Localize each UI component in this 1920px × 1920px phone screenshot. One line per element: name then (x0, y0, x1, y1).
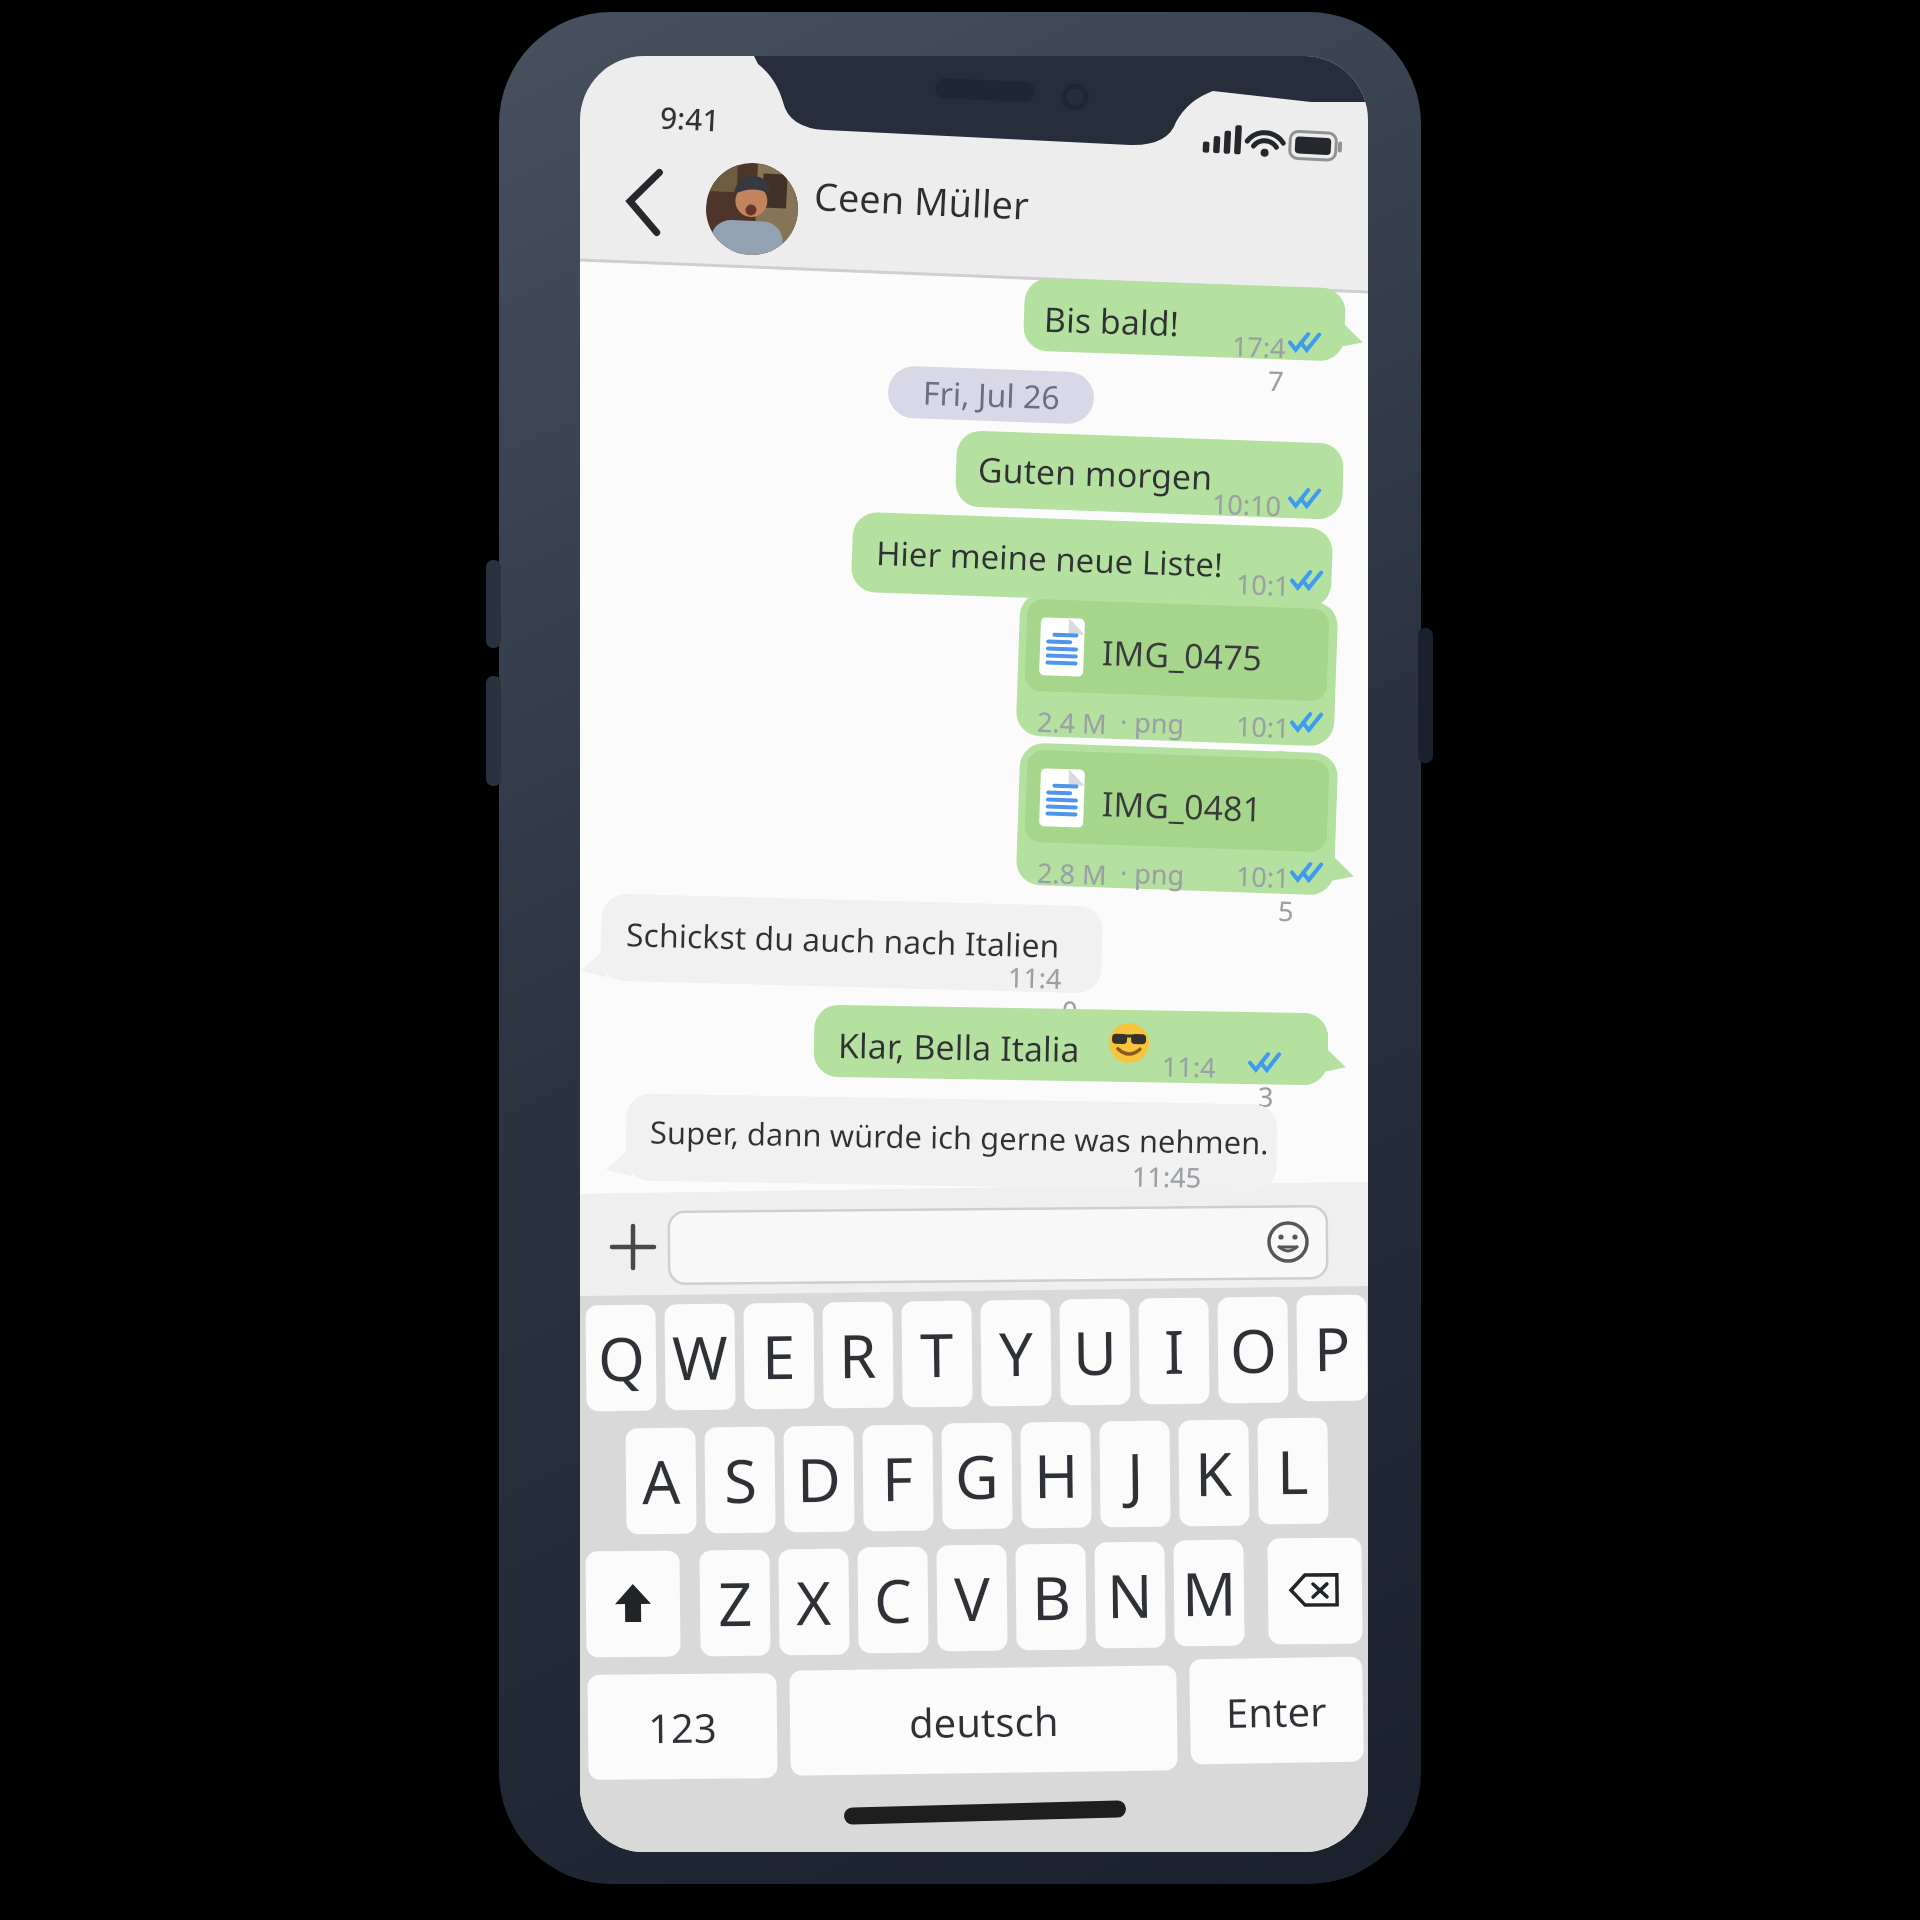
staticText: 11:4 (1162, 1047, 1216, 1085)
button[interactable]: F (862, 1425, 933, 1531)
staticText: F (882, 1437, 914, 1519)
button[interactable]: X (778, 1549, 849, 1655)
button[interactable]: B (1015, 1544, 1086, 1650)
staticText: 10:10 (1211, 485, 1283, 524)
staticText: A (642, 1440, 681, 1522)
button[interactable]: 123 (587, 1673, 778, 1780)
button[interactable] (1266, 1220, 1310, 1264)
button[interactable]: J (1099, 1421, 1170, 1527)
staticText: 0 (1061, 992, 1078, 1029)
staticText: IMG_0475 (1101, 629, 1264, 681)
staticText: · png (1119, 703, 1186, 742)
staticText: Y (999, 1312, 1033, 1394)
staticText: Enter (1225, 1683, 1327, 1739)
staticText: 3 (1258, 1078, 1274, 1115)
button[interactable]: G (941, 1423, 1012, 1529)
staticText: 7 (1267, 362, 1285, 399)
staticText: Ceen Müller (813, 169, 1030, 231)
staticText: J (1127, 1433, 1144, 1515)
button[interactable] (1267, 1537, 1362, 1644)
staticText: 10:1 (1235, 857, 1291, 896)
staticText: M (1182, 1552, 1237, 1634)
staticText: Fri, Jul 26 (922, 371, 1061, 419)
button[interactable]: R (822, 1302, 893, 1408)
staticText: Schickst du auch nach Italien (625, 912, 1060, 968)
button[interactable] (623, 169, 669, 237)
staticText: D (797, 1438, 841, 1520)
staticText: R (839, 1314, 877, 1396)
staticText: 11:4 (1007, 958, 1062, 997)
button[interactable]: Z (699, 1550, 770, 1656)
staticText: 5 (1273, 742, 1291, 779)
staticText: IMG_0481 (1101, 780, 1264, 832)
staticText: Z (718, 1562, 753, 1644)
button[interactable]: H (1020, 1422, 1091, 1528)
button[interactable]: T (901, 1301, 972, 1407)
button[interactable] (585, 1550, 680, 1657)
staticText: V (954, 1557, 990, 1639)
staticText: E (762, 1315, 796, 1397)
staticText: T (920, 1313, 954, 1395)
staticText: Klar, Bella Italia (838, 1022, 1080, 1072)
button[interactable]: D (783, 1426, 854, 1532)
button[interactable]: Y (980, 1300, 1051, 1406)
staticText: Q (598, 1317, 645, 1399)
staticText: W (672, 1316, 728, 1398)
staticText: C (874, 1559, 912, 1641)
staticText: I (1164, 1310, 1185, 1392)
staticText: 5 (1277, 892, 1295, 929)
staticText: K (1195, 1432, 1233, 1514)
staticText: deutsch (909, 1693, 1059, 1749)
staticText: 2.4 M (1036, 703, 1108, 742)
staticText: Guten morgen (977, 446, 1214, 500)
button[interactable]: U (1059, 1299, 1130, 1405)
button[interactable]: deutsch (789, 1665, 1178, 1776)
staticText: · png (1119, 854, 1186, 893)
staticText: P (1314, 1307, 1351, 1389)
button[interactable]: V (936, 1545, 1007, 1651)
staticText: Bis bald! (1043, 296, 1180, 346)
staticText: 10:1 (1235, 565, 1291, 604)
staticText: Hier meine neue Liste! (875, 530, 1224, 587)
staticText: U (1073, 1311, 1117, 1393)
staticText: 9:41 (659, 96, 721, 141)
staticText: S (724, 1439, 757, 1521)
staticText: 17:4 (1231, 327, 1287, 366)
button[interactable]: A (625, 1428, 696, 1534)
button[interactable]: M (1173, 1540, 1244, 1646)
staticText: L (1277, 1430, 1309, 1512)
button[interactable]: O (1217, 1297, 1288, 1403)
staticText: H (1034, 1434, 1079, 1516)
button[interactable]: N (1094, 1542, 1165, 1648)
button[interactable]: C (857, 1547, 928, 1653)
button[interactable] (704, 161, 800, 257)
button[interactable]: E (743, 1303, 814, 1409)
staticText: O (1230, 1309, 1277, 1391)
staticText: 0 (1267, 598, 1285, 635)
staticText: 2.8 M (1036, 854, 1108, 893)
staticText: 123 (648, 1700, 717, 1754)
staticText: Super, dann würde ich gerne was nehmen. (650, 1111, 1269, 1163)
button[interactable]: P (1296, 1295, 1367, 1401)
staticText: G (955, 1435, 999, 1517)
button[interactable]: I (1138, 1298, 1209, 1404)
button[interactable]: L (1257, 1418, 1328, 1524)
staticText: B (1032, 1556, 1071, 1638)
button[interactable]: Enter (1189, 1656, 1364, 1764)
button[interactable]: K (1178, 1420, 1249, 1526)
button[interactable] (610, 1224, 656, 1270)
staticText: 10:1 (1235, 707, 1291, 746)
staticText: 11:45 (1132, 1157, 1202, 1196)
button[interactable] (669, 1205, 1327, 1283)
button[interactable]: S (704, 1427, 775, 1533)
staticText: N (1107, 1554, 1153, 1636)
button[interactable]: Q (585, 1305, 656, 1411)
staticText: X (796, 1561, 832, 1643)
button[interactable]: W (664, 1304, 735, 1410)
